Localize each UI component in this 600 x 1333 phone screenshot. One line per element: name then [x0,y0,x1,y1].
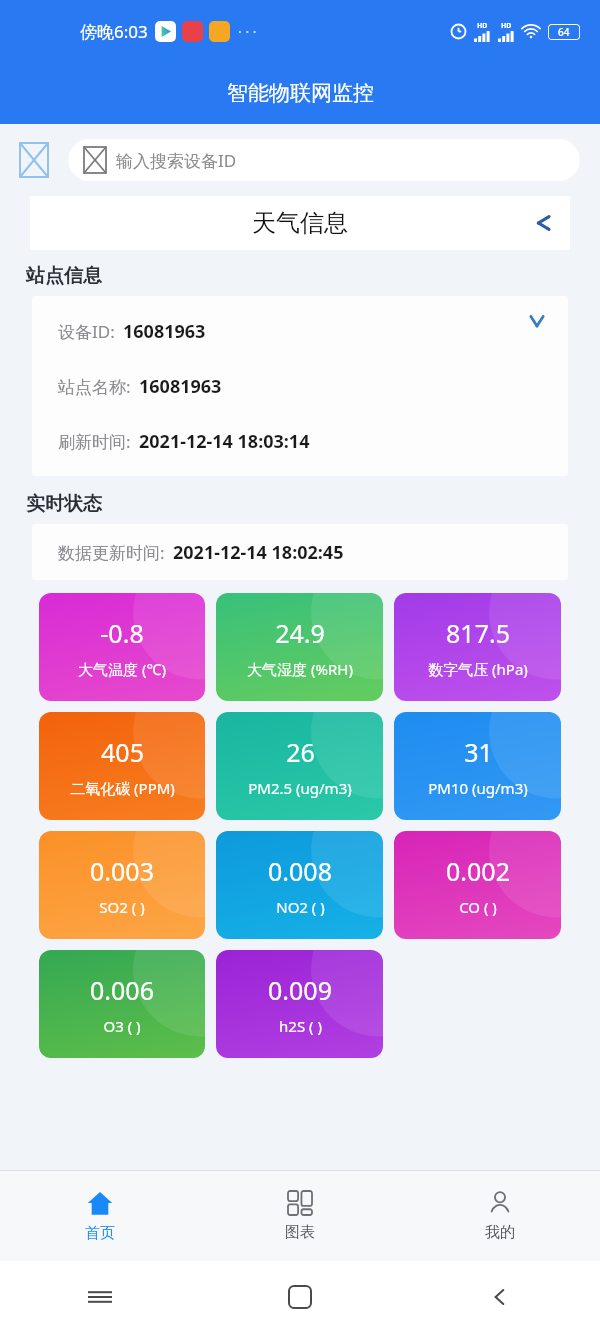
staticText: 智能物联网监控 [227,80,374,106]
button[interactable]: 26 [216,712,383,820]
button[interactable]: Expand [524,308,550,334]
staticText: HD [501,21,512,31]
staticText: 405 [101,735,144,769]
staticText: PM10 (ug/m3) [428,778,528,798]
staticText: 站点信息 [26,264,102,288]
staticText: 实时状态 [26,492,102,516]
button[interactable]: 图表 [200,1171,400,1261]
button[interactable]: 0.008 [216,831,383,939]
button[interactable]: 天气信息 [30,196,570,250]
staticText: 首页 [85,1224,115,1243]
staticText: 31 [464,735,493,769]
button[interactable]: 31 [394,712,561,820]
staticText: 0.009 [268,973,332,1007]
button[interactable]: 0.003 [39,831,205,939]
button[interactable]: 我的 [400,1171,600,1261]
staticText: h2S ( ) [279,1016,322,1036]
staticText: HD [477,21,488,31]
button[interactable]: 817.5 [394,593,561,701]
staticText: O3 ( ) [103,1016,141,1036]
other: Back [534,213,554,233]
staticText: 大气湿度 (%RH) [247,659,353,679]
button[interactable]: 0.009 [216,950,383,1058]
staticText: 2021-12-14 18:03:14 [139,429,310,454]
staticText: 64 [558,25,570,39]
staticText: CO ( ) [459,897,497,917]
staticText: PM2.5 (ug/m3) [248,778,352,798]
button[interactable]: 输入搜索设备ID [68,139,580,181]
button[interactable]: 405 [39,712,205,820]
button[interactable]: 0.006 [39,950,205,1058]
staticText: · · · [238,22,257,41]
button[interactable]: 首页 [0,1171,200,1261]
staticText: NO2 ( ) [276,897,325,917]
staticText: 输入搜索设备ID [116,149,237,172]
staticText: 0.003 [90,854,154,888]
staticText: 0.002 [446,854,510,888]
button[interactable]: -0.8 [39,593,205,701]
staticText: 数据更新时间: [58,541,165,564]
staticText: 26 [286,735,315,769]
staticText: 二氧化碳 (PPM) [70,778,175,798]
staticText: 图表 [285,1223,315,1242]
staticText: 2021-12-14 18:02:45 [173,540,344,565]
staticText: 0.008 [268,854,332,888]
button[interactable]: 24.9 [216,593,383,701]
staticText: 817.5 [446,616,510,650]
staticText: 数字气压 (hPa) [428,659,528,679]
staticText: 刷新时间: [58,430,131,453]
staticText: 16081963 [123,319,206,344]
staticText: 0.006 [90,973,154,1007]
button[interactable]: 0.002 [394,831,561,939]
button[interactable]: Menu [20,143,48,177]
staticText: 天气信息 [252,208,348,238]
staticText: 傍晚6:03 [80,20,148,43]
staticText: SO2 ( ) [99,897,145,917]
staticText: 24.9 [275,616,325,650]
staticText: 16081963 [139,374,222,399]
staticText: 我的 [485,1223,515,1242]
staticText: 站点名称: [58,375,131,398]
staticText: 设备ID: [58,320,115,343]
staticText: 大气温度 (℃) [78,659,166,679]
staticText: -0.8 [100,616,144,650]
